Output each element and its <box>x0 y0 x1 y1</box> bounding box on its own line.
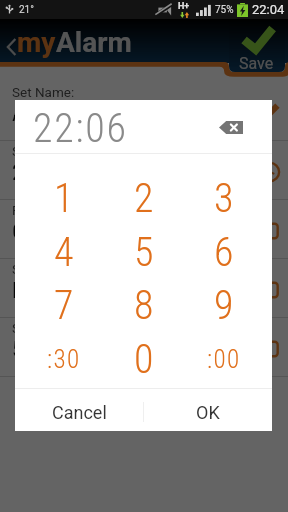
staticText: 6 <box>214 229 234 276</box>
staticText: 8 <box>134 282 154 329</box>
staticText: 2 <box>134 175 154 222</box>
staticText: my <box>17 26 56 59</box>
staticText: 3 <box>214 175 234 222</box>
button[interactable]: 2 <box>104 172 184 225</box>
staticText: Set Time: <box>12 143 69 159</box>
staticText: Alarm <box>56 26 132 59</box>
staticText: 22:04 <box>252 2 285 17</box>
button[interactable]: Snooze: <box>0 318 288 377</box>
staticText: Set Name: <box>12 84 75 100</box>
staticText: Save <box>239 54 274 73</box>
button[interactable]: 9 <box>184 279 264 332</box>
button[interactable]: Repeat: <box>0 200 288 259</box>
staticText: 5 <box>134 229 154 276</box>
button[interactable]: Back <box>5 38 18 56</box>
button[interactable]: 4 <box>24 226 104 279</box>
staticText: Default <box>12 278 75 304</box>
button[interactable]: Delete <box>213 115 249 139</box>
staticText: Once <box>12 219 57 245</box>
button[interactable]: 0 <box>104 333 184 386</box>
staticText: 75% <box>215 4 234 16</box>
staticText: 9 <box>214 282 234 329</box>
button[interactable]: 7 <box>24 279 104 332</box>
staticText: 4 <box>54 229 74 276</box>
button[interactable]: :00 <box>184 333 264 386</box>
staticText: Cancel <box>52 402 107 423</box>
button[interactable]: 5 <box>104 226 184 279</box>
staticText: 5 min <box>12 337 61 363</box>
staticText: Repeat: <box>12 202 58 218</box>
button[interactable]: Cancel <box>15 391 143 433</box>
staticText: 21° <box>19 4 34 16</box>
button[interactable]: 6 <box>184 226 264 279</box>
staticText: Sound: <box>12 261 54 277</box>
button[interactable]: OK <box>144 391 272 433</box>
staticText: 0 <box>134 336 154 383</box>
staticText: 1 <box>54 175 74 222</box>
button[interactable]: Save <box>229 19 285 72</box>
staticText: OK <box>196 402 220 423</box>
staticText: Snooze: <box>12 320 60 336</box>
staticText: :30 <box>47 345 81 374</box>
button[interactable]: 8 <box>104 279 184 332</box>
button[interactable]: 1 <box>24 172 104 225</box>
button[interactable]: Set Time: <box>0 141 288 200</box>
button[interactable]: 3 <box>184 172 264 225</box>
button[interactable]: Set Name: <box>0 82 288 141</box>
button[interactable]: :30 <box>24 333 104 386</box>
staticText: :00 <box>207 345 241 374</box>
button[interactable]: Sound: <box>0 259 288 318</box>
staticText: 22:06 <box>12 160 61 186</box>
staticText: 22:06 <box>33 105 128 152</box>
staticText: Alarm 1 <box>12 101 80 127</box>
staticText: 7 <box>54 282 74 329</box>
staticText: H+ <box>178 1 190 12</box>
